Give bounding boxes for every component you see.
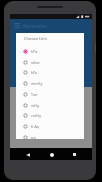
button[interactable]: Recent apps [69,149,80,160]
staticText: Barometer [23,23,47,29]
button[interactable]: cmHg [16,110,84,121]
button[interactable]: inHg [16,100,84,111]
button[interactable]: Torr [16,89,84,100]
staticText: mmHg [31,81,43,86]
staticText: Torr [31,92,38,97]
staticText: ft.Aq [31,124,39,129]
staticText: cmHg [31,113,41,118]
staticText: inHg [31,103,39,108]
button[interactable]: Open navigation drawer [10,19,23,32]
staticText: kPa [31,70,37,75]
button[interactable]: psi [16,132,84,139]
button[interactable]: Home [46,149,57,160]
staticText: Choose Unit [24,36,47,41]
button[interactable]: mbar [16,57,84,68]
button[interactable]: ft.Aq [16,121,84,132]
button[interactable]: hPa [16,46,84,57]
staticText: hPa [31,49,38,54]
button[interactable]: Back [22,149,33,160]
staticText: mbar [31,60,40,65]
button[interactable]: mmHg [16,78,84,89]
button[interactable]: kPa [16,67,84,78]
staticText: psi [31,135,36,139]
